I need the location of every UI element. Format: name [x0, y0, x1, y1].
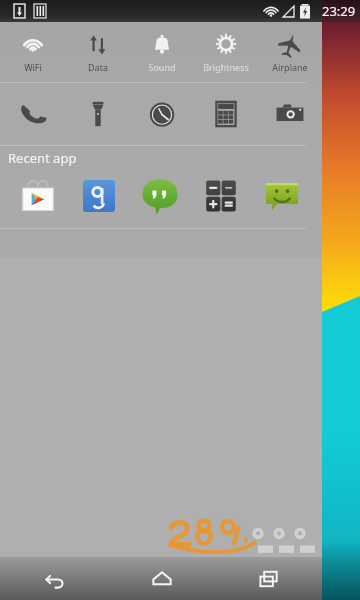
button[interactable]: Airplane: [258, 22, 322, 82]
button[interactable]: Play Store: [18, 176, 58, 216]
staticText: Airplane: [272, 61, 308, 73]
button[interactable]: Hangouts: [140, 176, 180, 216]
button[interactable]: Sound: [130, 22, 194, 82]
staticText: Data: [88, 61, 108, 73]
button[interactable]: Google: [79, 176, 119, 216]
staticText: Recent app: [8, 149, 77, 167]
button[interactable]: Home: [108, 557, 215, 600]
button[interactable]: Camera: [258, 83, 322, 145]
button[interactable]: WiFi: [0, 22, 65, 82]
button[interactable]: Calculator: [194, 83, 258, 145]
staticText: 23:29: [322, 2, 356, 20]
button[interactable]: Clock: [130, 83, 194, 145]
button[interactable]: Messaging: [262, 176, 302, 216]
button[interactable]: Calculator: [201, 176, 241, 216]
staticText: Sound: [148, 61, 176, 73]
button[interactable]: Data: [65, 22, 130, 82]
button[interactable]: Back: [0, 557, 108, 600]
staticText: Brightness: [203, 61, 249, 73]
button[interactable]: Recents: [215, 557, 322, 600]
button[interactable]: Phone: [0, 83, 65, 145]
button[interactable]: Flashlight: [65, 83, 130, 145]
button[interactable]: Brightness: [194, 22, 258, 82]
staticText: WiFi: [24, 61, 42, 73]
